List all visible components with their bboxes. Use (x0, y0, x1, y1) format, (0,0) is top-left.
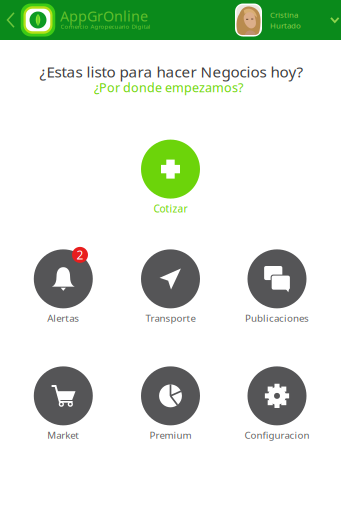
button[interactable]: Configuracion (223, 364, 330, 444)
staticText: Configuracion (244, 428, 309, 442)
staticText: Cotizar (153, 202, 187, 215)
button[interactable]: Cristina Hurtado (231, 0, 341, 40)
staticText: Market (47, 428, 79, 442)
staticText: Transporte (145, 311, 195, 325)
staticText: Alertas (47, 311, 79, 325)
button[interactable]: Premium (117, 364, 224, 444)
staticText: AppGrOnline (60, 6, 148, 26)
button[interactable]: 2 (10, 247, 117, 327)
button[interactable]: Publicaciones (223, 247, 330, 327)
staticText: ¿Por donde empezamos? (94, 79, 243, 96)
button[interactable]: Back (0, 0, 22, 40)
staticText: Cristina Hurtado (270, 9, 301, 31)
staticText: Premium (149, 428, 191, 442)
staticText: 2 (76, 247, 83, 263)
button[interactable]: Market (10, 364, 117, 444)
button[interactable]: Transporte (117, 247, 224, 327)
staticText: Comercio Agropecuario Digital (60, 22, 150, 31)
button[interactable]: Cotizar (120, 136, 220, 218)
staticText: ¿Estas listo para hacer Negocios hoy? (39, 61, 303, 82)
staticText: Publicaciones (245, 311, 309, 325)
